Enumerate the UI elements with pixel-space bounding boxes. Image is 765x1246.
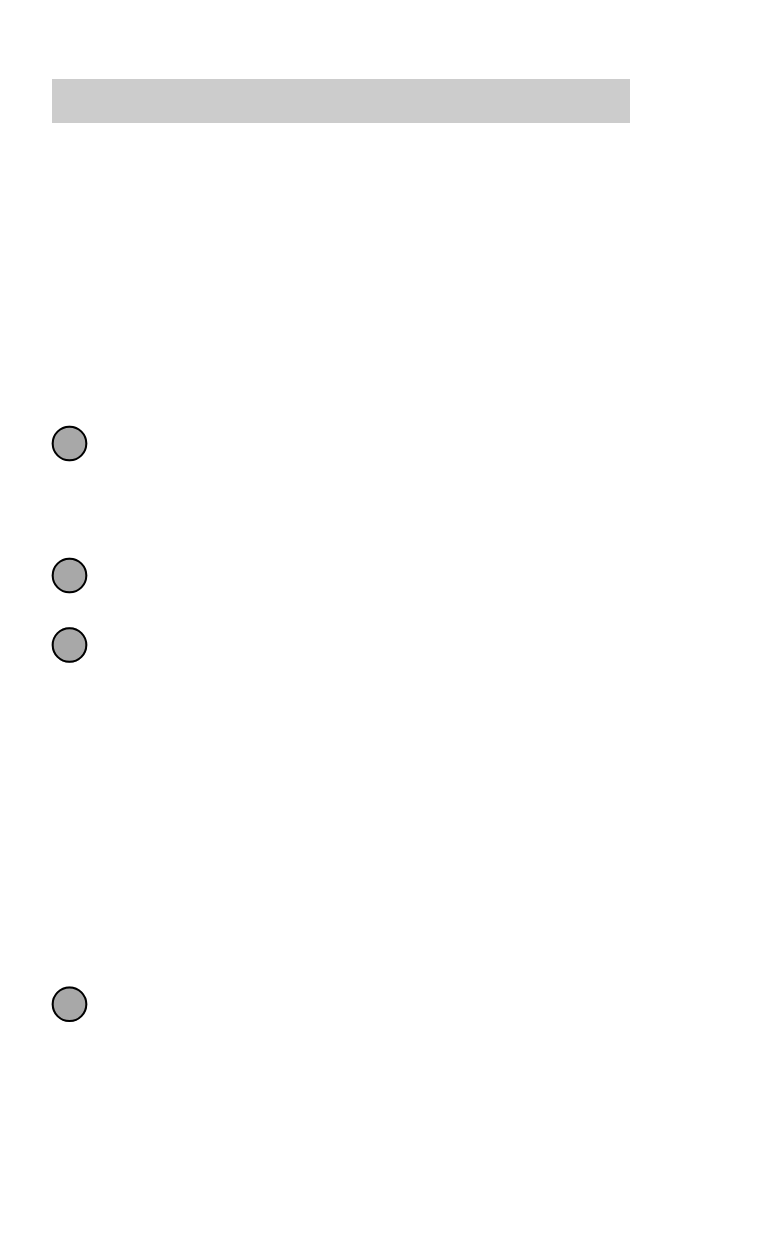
button[interactable]: Option 4 xyxy=(51,985,88,1022)
button[interactable]: Option 1 xyxy=(51,425,88,462)
button[interactable]: Option 2 xyxy=(51,557,88,594)
button[interactable]: Option 3 xyxy=(51,626,88,663)
